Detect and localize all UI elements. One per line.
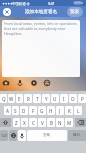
button[interactable]: C [29, 118, 37, 127]
staticText: I [63, 96, 65, 102]
button[interactable]: 空格 [27, 130, 67, 141]
button[interactable]: U [51, 94, 59, 103]
staticText: R [27, 96, 30, 102]
button[interactable]: M [65, 118, 73, 127]
button[interactable]: Emoji [41, 78, 52, 88]
button[interactable]: 换行 [68, 130, 86, 141]
button[interactable]: Close [3, 8, 11, 16]
staticText: X [23, 120, 26, 126]
button[interactable]: Z [13, 118, 20, 127]
staticText: 中国联通 令 [12, 1, 30, 6]
staticText: M [67, 120, 72, 126]
staticText: G [40, 108, 44, 114]
button[interactable]: T [33, 94, 41, 103]
staticText: E [18, 96, 21, 102]
staticText: Q [2, 96, 6, 102]
staticText: D [22, 108, 26, 114]
button[interactable]: G [38, 106, 46, 115]
staticText: L [77, 108, 80, 114]
button[interactable]: H [47, 106, 55, 115]
button[interactable]: Voice message [14, 78, 25, 88]
button[interactable]: Switch language [9, 130, 17, 141]
staticText: J [59, 108, 61, 114]
button[interactable]: J [56, 106, 64, 115]
staticText: H [49, 108, 53, 114]
button[interactable]: X [21, 118, 28, 127]
staticText: V [41, 120, 44, 126]
button[interactable]: V [38, 118, 46, 127]
staticText: 添加本地查看名 [25, 9, 58, 15]
button[interactable]: Backspace [75, 118, 86, 127]
button[interactable]: Q [0, 94, 7, 103]
staticText: T [36, 96, 39, 102]
staticText: Z [15, 120, 18, 126]
staticText: 发表 [70, 9, 80, 15]
button[interactable]: E [16, 94, 23, 103]
button[interactable]: Voice input [18, 130, 26, 141]
staticText: C [32, 120, 35, 126]
button[interactable]: R [24, 94, 32, 103]
staticText: B [50, 120, 53, 126]
staticText: 9:41 [48, 1, 55, 6]
staticText: F [32, 108, 35, 114]
button[interactable]: W [8, 94, 15, 103]
button[interactable]: Add photo [0, 78, 11, 88]
staticText: 换行 [73, 133, 81, 138]
staticText: N [58, 120, 62, 126]
button[interactable]: P [78, 94, 86, 103]
button[interactable]: L [74, 106, 82, 115]
button[interactable]: 123 [0, 130, 8, 141]
button[interactable]: F [29, 106, 37, 115]
staticText: Y [45, 96, 48, 102]
staticText: A [6, 108, 9, 114]
staticText: O [71, 96, 75, 102]
staticText: 空格 [43, 133, 51, 138]
staticText: P [81, 96, 84, 102]
button[interactable]: O [69, 94, 77, 103]
button[interactable]: K [65, 106, 73, 115]
staticText: S [14, 108, 17, 114]
button[interactable]: D [20, 106, 28, 115]
staticText: From local news, events, info or questio… [4, 21, 79, 36]
staticText: W [9, 96, 14, 102]
staticText: K [68, 108, 71, 114]
button[interactable]: I [60, 94, 68, 103]
button[interactable]: B [47, 118, 55, 127]
button[interactable]: Add location [28, 78, 39, 88]
button[interactable]: Shift [0, 118, 11, 127]
button[interactable]: S [12, 106, 19, 115]
button[interactable]: A [4, 106, 11, 115]
staticText: 123 [1, 133, 7, 138]
button[interactable]: 发表 [67, 7, 83, 17]
button[interactable]: Y [42, 94, 50, 103]
staticText: U [53, 96, 57, 102]
button[interactable]: N [56, 118, 64, 127]
